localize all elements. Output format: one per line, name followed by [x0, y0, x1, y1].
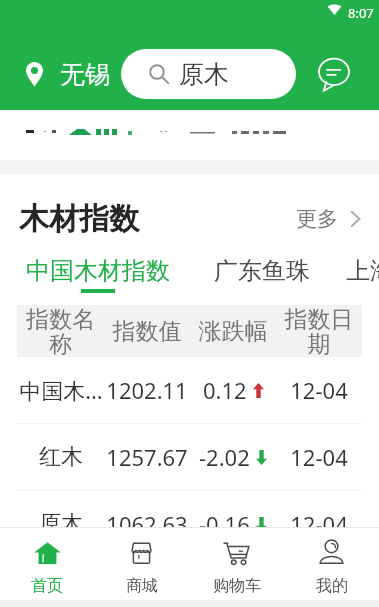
staticText: 指数日期 [276, 305, 362, 357]
staticText: 红木 [39, 443, 83, 471]
button[interactable]: 广东鱼珠 [214, 256, 310, 289]
staticText: 无锡 [60, 59, 110, 90]
staticText: 商城 [126, 576, 158, 596]
button[interactable]: 红木 [0, 424, 379, 490]
button[interactable]: 中国木材指数 [26, 256, 170, 293]
staticText: 1257.67 [104, 442, 190, 472]
button[interactable]: 无锡 [26, 59, 110, 90]
staticText: 1202.11 [104, 375, 190, 405]
staticText: 指数名称 [17, 305, 104, 357]
button[interactable]: 中国木… [0, 357, 379, 423]
button[interactable]: 更多 [296, 200, 361, 238]
staticText: 涨跌幅 [190, 317, 276, 346]
button[interactable]: 上海 [361, 256, 379, 289]
staticText: 原木 [39, 510, 83, 538]
staticText: 中国木材指数 [26, 256, 170, 286]
button[interactable]: 原木 [121, 49, 296, 99]
staticText: 原木 [179, 59, 229, 90]
staticText: -2.02 [199, 442, 250, 472]
staticText: 1062.63 [104, 509, 190, 539]
staticText: 指数值 [104, 317, 190, 346]
button[interactable]: 我的 [284, 533, 379, 596]
staticText: 更多 [296, 206, 338, 232]
button[interactable]: 首页 [0, 533, 94, 596]
button[interactable]: 商城 [94, 533, 189, 596]
staticText: 12-04 [276, 375, 362, 405]
staticText: 首页 [31, 576, 63, 596]
staticText: 木材指数 [19, 200, 139, 238]
staticText: 广东鱼珠 [214, 256, 310, 286]
button[interactable]: 购物车 [189, 533, 284, 596]
staticText: 0.12 [203, 375, 247, 405]
staticText: 12-04 [276, 509, 362, 539]
staticText: 12-04 [276, 442, 362, 472]
staticText: -0.16 [199, 509, 250, 539]
staticText: 中国木… [19, 375, 103, 405]
staticText: 上海 [346, 256, 379, 286]
staticText: 8:07 [348, 4, 374, 22]
button[interactable]: Messages [317, 57, 351, 91]
staticText: 购物车 [213, 576, 261, 596]
staticText: 我的 [316, 576, 348, 596]
button[interactable]: 原木 [0, 491, 379, 557]
